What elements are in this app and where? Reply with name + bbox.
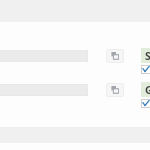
button[interactable]: G — [141, 82, 150, 97]
button[interactable]: Toggle — [141, 99, 150, 108]
staticText: S — [145, 49, 150, 63]
button[interactable]: S — [141, 48, 150, 63]
button[interactable]: Copy — [106, 49, 124, 63]
staticText: G — [145, 83, 150, 97]
button[interactable]: Toggle — [141, 65, 150, 74]
button[interactable]: Copy — [106, 83, 124, 97]
